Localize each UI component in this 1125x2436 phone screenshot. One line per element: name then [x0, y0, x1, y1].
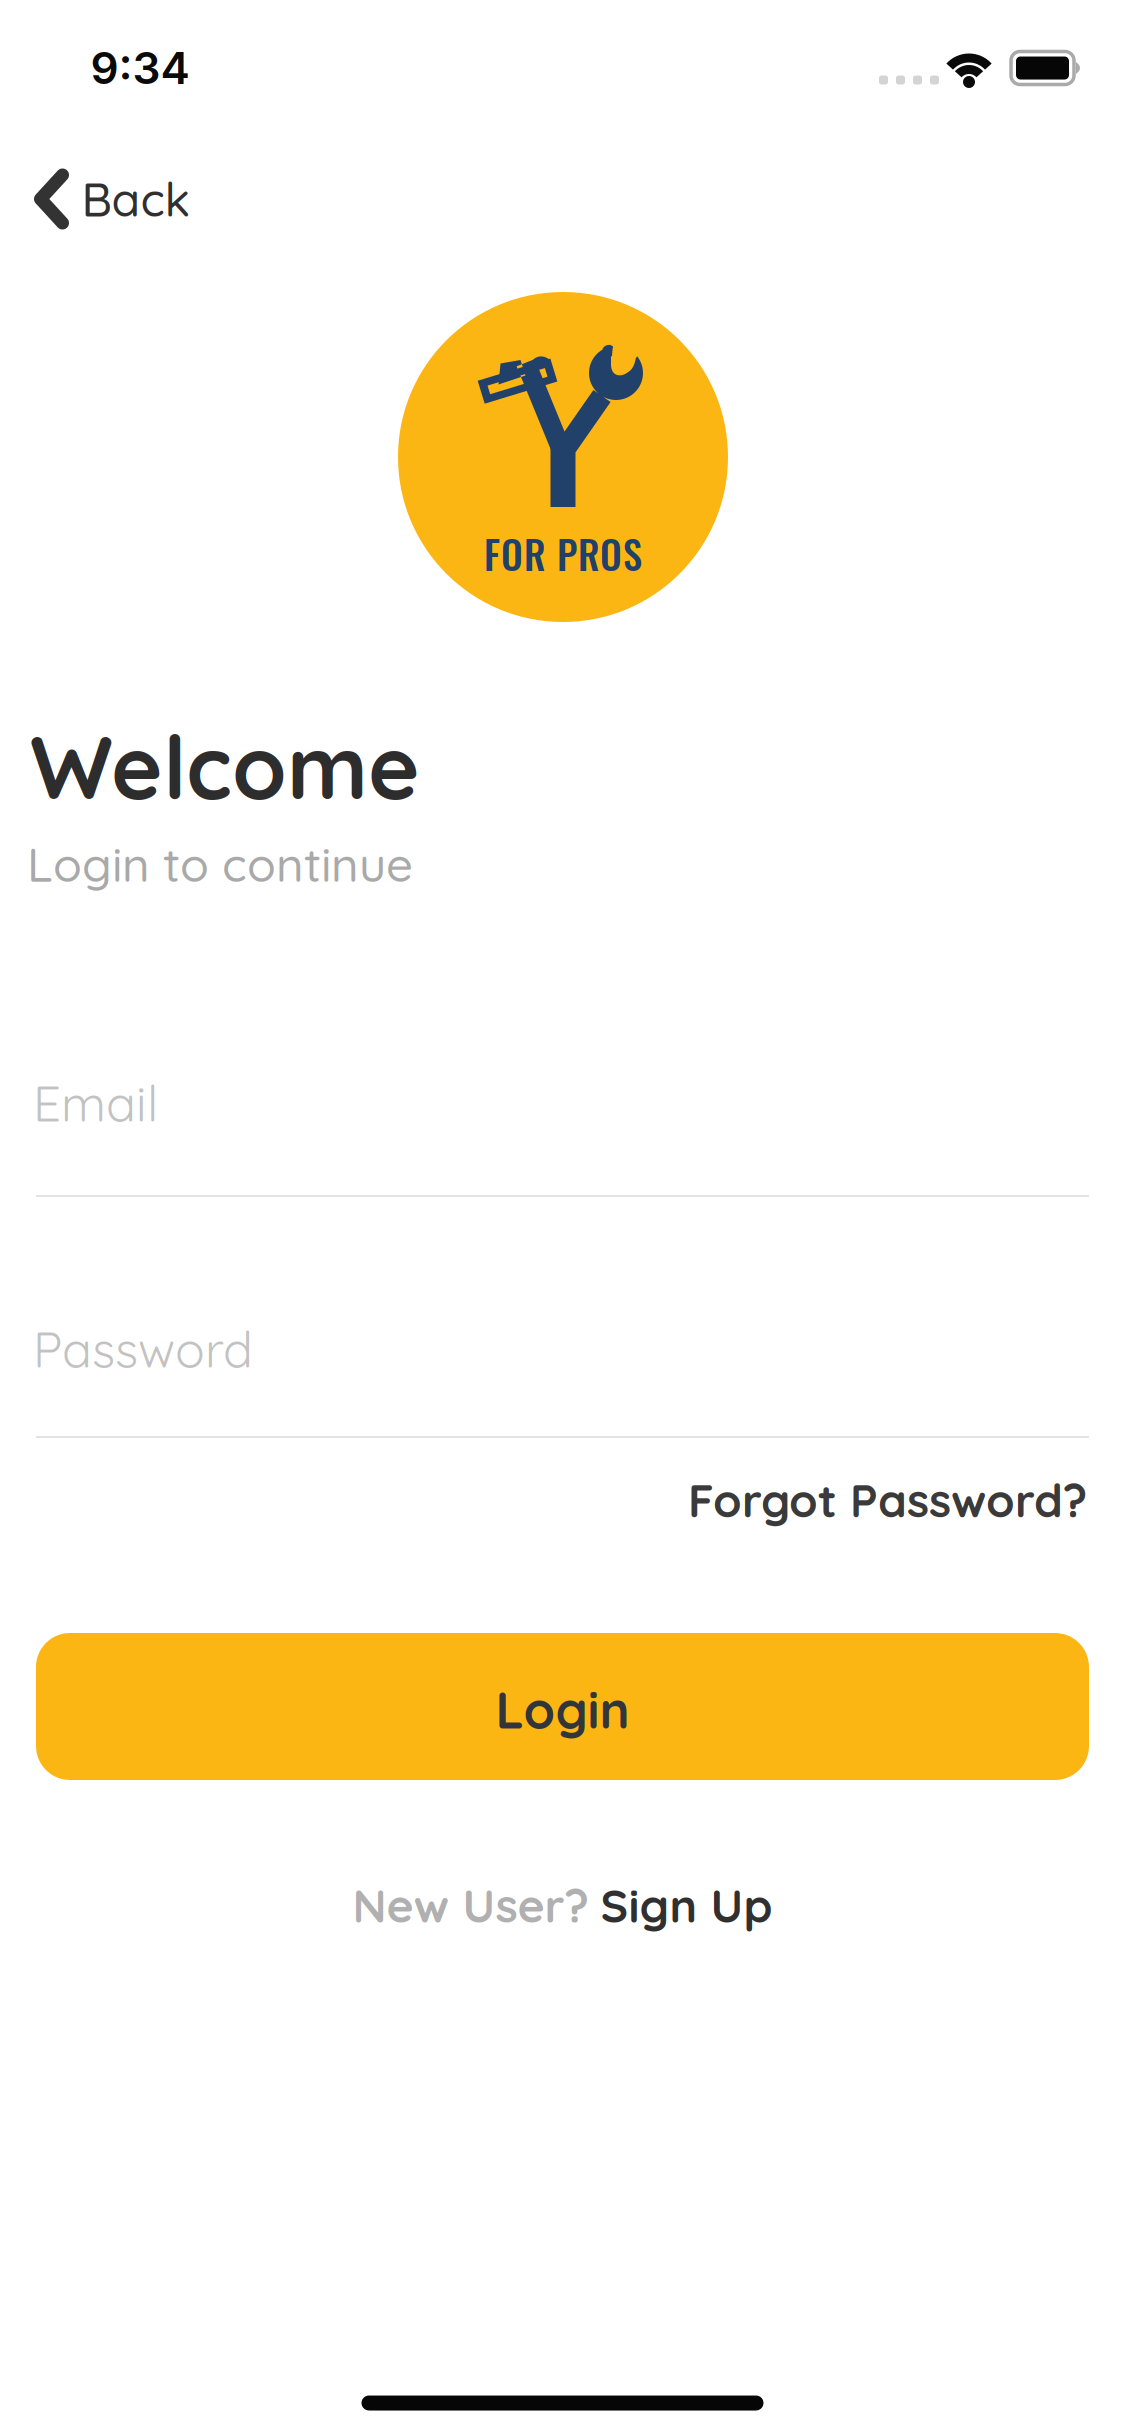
staticText: Welcome — [30, 711, 420, 821]
staticText: Login — [495, 1678, 629, 1741]
staticText: Forgot Password? — [688, 1471, 1087, 1529]
staticText: New User? — [352, 1876, 588, 1934]
button[interactable]: Login — [36, 1633, 1089, 1780]
button[interactable]: Back — [37, 170, 190, 228]
staticText: FOR PROS — [484, 525, 642, 582]
staticText: 9:34 — [90, 41, 189, 95]
button[interactable]: New User? — [352, 1876, 772, 1934]
staticText: Email — [33, 1072, 158, 1134]
staticText: Password — [33, 1318, 253, 1380]
staticText: Sign Up — [600, 1876, 772, 1934]
staticText: Login to continue — [27, 834, 413, 894]
button[interactable]: Forgot Password? — [0, 1471, 1125, 1529]
staticText: Back — [81, 170, 190, 228]
